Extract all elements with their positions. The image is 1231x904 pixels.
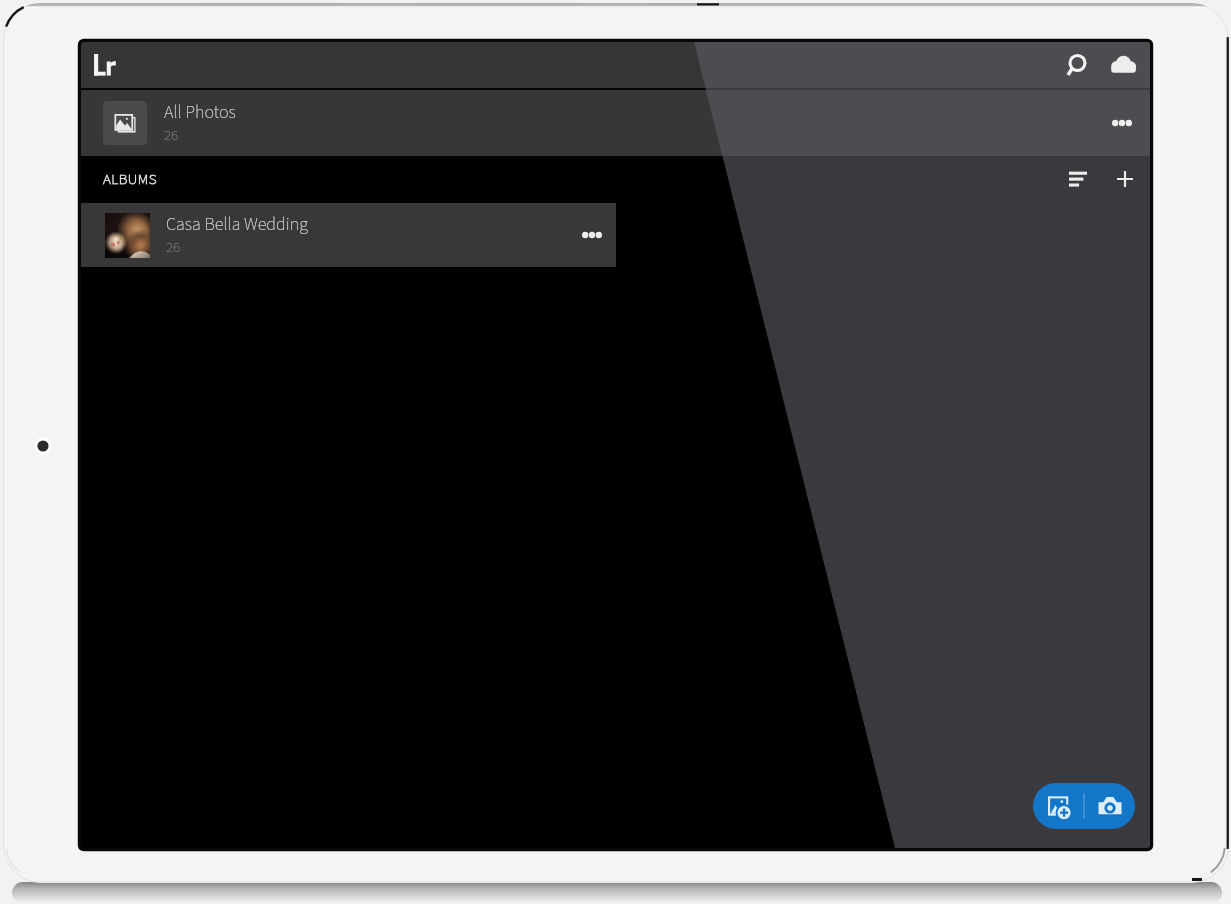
button[interactable]: All Photos (81, 90, 1150, 156)
button[interactable]: Lightroom (93, 46, 123, 88)
button[interactable]: Casa Bella Wedding (81, 203, 616, 267)
staticText: All Photos (164, 100, 236, 126)
staticText: ALBUMS (103, 169, 157, 190)
button[interactable]: Sort albums (1055, 156, 1101, 202)
button[interactable]: Create album (1102, 156, 1148, 202)
staticText: Casa Bella Wedding (166, 212, 308, 238)
staticText: 26 (166, 237, 181, 258)
button[interactable]: Search (1052, 42, 1098, 88)
button[interactable]: Album options (568, 211, 616, 259)
button[interactable]: Cloud sync status (1100, 42, 1146, 88)
button[interactable]: Camera (1084, 783, 1135, 829)
staticText: 26 (164, 125, 179, 146)
button[interactable]: All photos options (1097, 98, 1147, 148)
button[interactable]: Add photos from library (1033, 783, 1084, 829)
